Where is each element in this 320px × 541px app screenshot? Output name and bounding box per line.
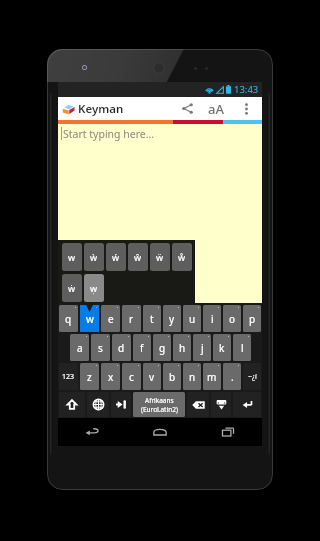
button[interactable]: q — [59, 305, 78, 332]
button[interactable]: a — [70, 334, 89, 361]
staticText: d — [118, 341, 125, 355]
button[interactable]: Share — [174, 97, 200, 120]
staticText: s — [98, 341, 103, 355]
staticText: j — [201, 341, 204, 355]
button[interactable]: Change language — [87, 392, 109, 417]
button[interactable]: Text size — [200, 97, 231, 120]
staticText: ẅ — [156, 251, 164, 263]
staticText: n — [189, 370, 196, 384]
button[interactable]: v — [143, 363, 161, 390]
button[interactable]: t — [143, 305, 161, 332]
staticText: ẘ — [178, 251, 186, 263]
staticText: p — [249, 312, 256, 326]
staticText: i — [211, 312, 214, 326]
button[interactable]: c — [122, 363, 141, 390]
button[interactable]: w — [62, 243, 82, 271]
staticText: (EuroLatin2) — [141, 405, 178, 414]
staticText: y — [169, 312, 175, 326]
button[interactable]: Back — [58, 418, 126, 445]
staticText: Afrikaans — [145, 396, 174, 405]
staticText: c — [129, 370, 134, 384]
button[interactable]: More options — [231, 97, 262, 120]
button[interactable]: ẁ — [84, 243, 104, 271]
button[interactable]: Backspace — [187, 392, 209, 417]
button[interactable]: ~¿í — [243, 363, 261, 390]
button[interactable]: Tab — [111, 392, 131, 417]
button[interactable]: z — [80, 363, 99, 390]
staticText: ẇ — [68, 282, 76, 294]
staticText: k — [219, 341, 225, 355]
staticText: f — [140, 341, 144, 355]
button[interactable]: ŵ — [128, 243, 148, 271]
staticText: ~¿í — [248, 372, 257, 382]
staticText: l — [241, 341, 244, 355]
button[interactable]: m — [203, 363, 221, 390]
button[interactable]: . — [223, 363, 241, 390]
staticText: ẉ — [90, 282, 98, 294]
button[interactable]: e — [101, 305, 120, 332]
staticText: aA — [208, 100, 224, 118]
staticText: o — [229, 312, 236, 326]
button[interactable]: f — [133, 334, 151, 361]
button[interactable]: ẇ — [62, 274, 82, 302]
staticText: b — [169, 370, 176, 384]
button[interactable]: Recent apps — [194, 418, 262, 445]
staticText: ẁ — [90, 251, 98, 263]
staticText: ŵ — [134, 251, 142, 263]
button[interactable]: Home — [126, 418, 194, 445]
button[interactable]: w — [80, 305, 99, 332]
staticText: w — [68, 251, 76, 263]
staticText: z — [87, 370, 92, 384]
button[interactable]: b — [163, 363, 181, 390]
staticText: x — [108, 370, 114, 384]
staticText: 123 — [62, 372, 75, 382]
staticText: w — [86, 312, 94, 326]
staticText: r — [129, 312, 134, 326]
button[interactable]: s — [91, 334, 110, 361]
staticText: v — [149, 370, 155, 384]
button[interactable]: Shift — [59, 392, 85, 417]
staticText: a — [77, 341, 83, 355]
staticText: . — [231, 370, 234, 384]
button[interactable]: u — [183, 305, 201, 332]
button[interactable]: k — [213, 334, 231, 361]
button[interactable]: ẘ — [172, 243, 192, 271]
staticText: u — [189, 312, 196, 326]
staticText: t — [150, 312, 154, 326]
staticText: e — [108, 312, 114, 326]
button[interactable]: ẅ — [150, 243, 170, 271]
button[interactable]: h — [173, 334, 191, 361]
staticText: g — [159, 341, 166, 355]
button[interactable]: p — [243, 305, 261, 332]
staticText: m — [207, 370, 217, 384]
button[interactable]: 123 — [59, 363, 78, 390]
staticText: Keyman — [78, 101, 124, 117]
staticText: h — [179, 341, 186, 355]
button[interactable]: r — [122, 305, 141, 332]
button[interactable]: Enter — [233, 392, 261, 417]
button[interactable]: g — [153, 334, 171, 361]
button[interactable]: j — [193, 334, 211, 361]
button[interactable]: Hide keyboard — [211, 392, 231, 417]
button[interactable]: Afrikaans — [133, 392, 185, 417]
button[interactable]: d — [112, 334, 131, 361]
button[interactable]: i — [203, 305, 221, 332]
staticText: q — [65, 312, 72, 326]
button[interactable]: x — [101, 363, 120, 390]
button[interactable]: l — [233, 334, 251, 361]
button[interactable]: o — [223, 305, 241, 332]
button[interactable]: n — [183, 363, 201, 390]
button[interactable]: y — [163, 305, 181, 332]
button[interactable]: ẃ — [106, 243, 126, 271]
staticText: Start typing here… — [63, 127, 155, 141]
staticText: 13:43 — [234, 83, 259, 96]
button[interactable]: ẉ — [84, 274, 104, 302]
staticText: ẃ — [112, 251, 120, 263]
